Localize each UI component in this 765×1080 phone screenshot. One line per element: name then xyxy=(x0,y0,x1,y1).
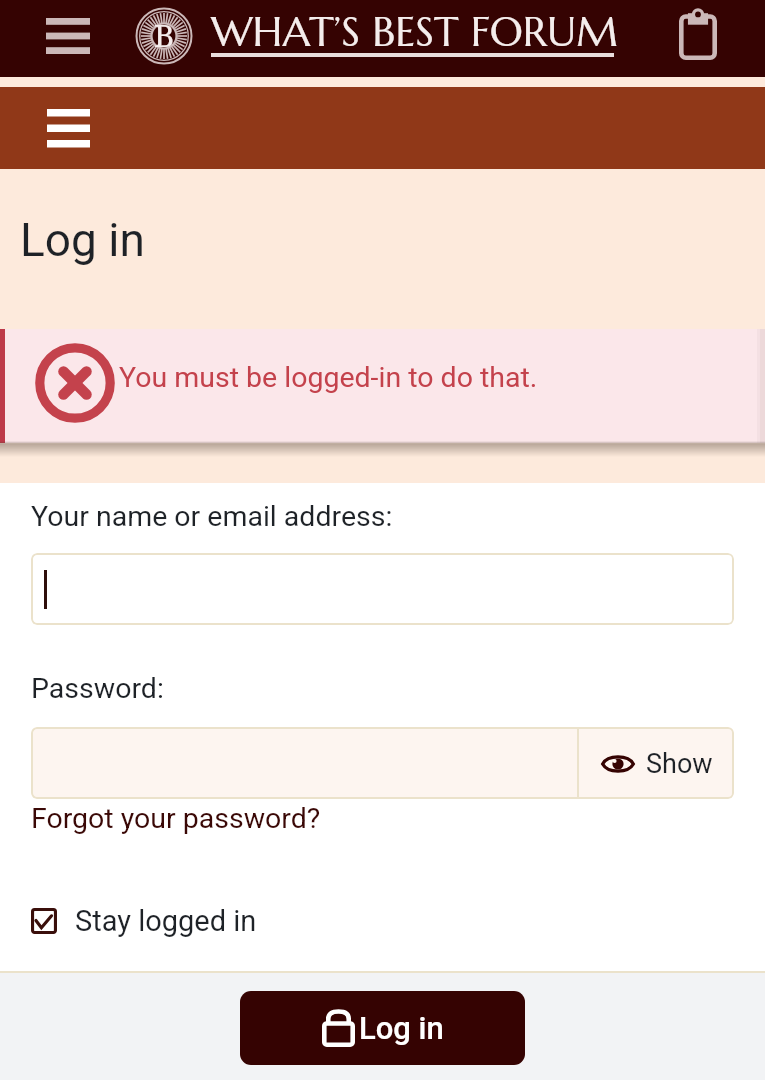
staticText: WHAT’S BEST FORUM xyxy=(211,6,618,57)
button[interactable] xyxy=(31,553,734,625)
button[interactable]: Clipboard xyxy=(662,4,734,66)
staticText: Show xyxy=(646,748,713,780)
button[interactable]: Home xyxy=(136,8,192,64)
button[interactable]: Navigation menu xyxy=(24,93,112,163)
staticText: Log in xyxy=(359,1010,444,1046)
button[interactable]: Menu xyxy=(24,3,112,68)
button[interactable]: WHAT’S BEST FORUM xyxy=(211,6,618,57)
staticText: Password: xyxy=(31,672,164,705)
button[interactable]: Stay logged in xyxy=(31,903,257,938)
button[interactable]: Log in xyxy=(240,991,525,1065)
button[interactable]: Forgot your password? xyxy=(31,802,321,835)
button[interactable] xyxy=(31,727,577,799)
staticText: You must be logged-in to do that. xyxy=(119,361,538,394)
staticText: Log in xyxy=(20,213,145,267)
staticText: B xyxy=(154,14,175,56)
staticText: Your name or email address: xyxy=(31,500,393,533)
button[interactable]: Show xyxy=(579,727,734,799)
staticText: Stay logged in xyxy=(75,904,257,938)
